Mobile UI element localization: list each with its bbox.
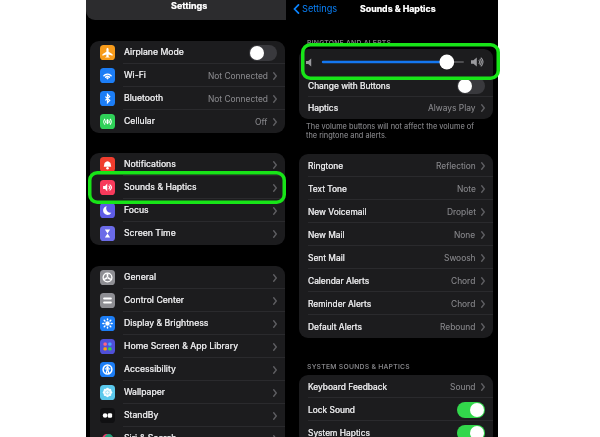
other: Open (273, 366, 277, 374)
staticText: Notifications (124, 159, 176, 170)
staticText: Display & Brightness (124, 318, 209, 329)
other: Open (273, 297, 277, 305)
other: Open (481, 231, 485, 239)
button[interactable]: StandBy (90, 404, 285, 427)
staticText: Wi-Fi (124, 70, 146, 81)
other: Open (273, 118, 277, 126)
other: Open (481, 254, 485, 262)
other: Open (273, 95, 277, 103)
staticText: Keyboard Feedback (308, 382, 388, 392)
other: Open (273, 274, 277, 282)
button[interactable]: Reminder Alerts (299, 292, 493, 315)
staticText: Chord (451, 276, 476, 286)
other: Open (273, 72, 277, 80)
staticText: Off (255, 117, 268, 127)
staticText: Not Connected (208, 71, 268, 81)
staticText: SYSTEM SOUNDS & HAPTICS (307, 362, 410, 370)
button[interactable]: Accessibility (90, 358, 285, 381)
staticText: Calendar Alerts (308, 276, 370, 286)
button[interactable]: General (90, 266, 285, 289)
staticText: Settings (171, 0, 208, 11)
button[interactable]: Volume (299, 49, 493, 75)
staticText: RINGTONE AND ALERTS (307, 38, 392, 46)
staticText: Sent Mail (308, 253, 345, 263)
staticText: Reflection (436, 161, 476, 171)
staticText: Settings (302, 3, 338, 14)
button[interactable]: Control Center (90, 289, 285, 312)
button[interactable]: Home Screen & App Library (90, 335, 285, 358)
other: Open (481, 104, 485, 112)
staticText: Change with Buttons (308, 81, 391, 91)
staticText: Cellular (124, 116, 156, 127)
other: Open (273, 184, 277, 192)
staticText: Screen Time (124, 228, 176, 239)
staticText: Airplane Mode (124, 47, 184, 58)
staticText: Lock Sound (308, 405, 356, 415)
button[interactable]: Wi-Fi (90, 64, 285, 87)
button[interactable]: Calendar Alerts (299, 269, 493, 292)
button[interactable]: Siri & Search (90, 427, 285, 437)
button[interactable]: Cellular (90, 110, 285, 133)
staticText: Text Tone (308, 184, 347, 194)
other: Open (481, 323, 485, 331)
button[interactable]: Airplane Mode (90, 41, 285, 64)
button[interactable]: Toggle (457, 402, 485, 418)
staticText: Note (457, 184, 476, 194)
other: Open (481, 162, 485, 170)
button[interactable]: Ringtone (299, 154, 493, 177)
button[interactable]: Lock Sound (299, 398, 493, 421)
button[interactable]: Screen Time (90, 222, 285, 245)
other: Open (273, 343, 277, 351)
staticText: New Mail (308, 230, 345, 240)
other: Open (481, 300, 485, 308)
other: Open (273, 161, 277, 169)
staticText: The volume buttons will not affect the v… (306, 122, 486, 140)
other: Open (273, 207, 277, 215)
staticText: Control Center (124, 295, 185, 306)
button[interactable]: Haptics (299, 97, 493, 119)
button[interactable]: Toggle (457, 425, 485, 437)
button[interactable]: System Haptics (299, 421, 493, 437)
button[interactable]: Keyboard Feedback (299, 375, 493, 398)
staticText: Siri & Search (124, 433, 177, 437)
button[interactable]: Focus (90, 199, 285, 222)
button[interactable]: Text Tone (299, 177, 493, 200)
other: Open (481, 185, 485, 193)
staticText: Swoosh (444, 253, 476, 263)
staticText: General (124, 272, 156, 283)
button[interactable]: Wallpaper (90, 381, 285, 404)
other: Open (273, 435, 277, 437)
button[interactable]: Bluetooth (90, 87, 285, 110)
staticText: Default Alerts (308, 322, 362, 332)
button[interactable]: Sent Mail (299, 246, 493, 269)
button[interactable]: Toggle (249, 45, 277, 61)
staticText: None (454, 230, 476, 240)
button[interactable]: Notifications (90, 153, 285, 176)
button[interactable]: Settings (286, 1, 343, 16)
staticText: Sound (450, 382, 476, 392)
other: Open (481, 277, 485, 285)
button[interactable]: Display & Brightness (90, 312, 285, 335)
staticText: Ringtone (308, 161, 344, 171)
staticText: System Haptics (308, 428, 370, 437)
other: Open (273, 389, 277, 397)
button[interactable]: New Voicemail (299, 200, 493, 223)
staticText: Focus (124, 205, 149, 216)
staticText: Haptics (308, 103, 339, 113)
staticText: Chord (451, 299, 476, 309)
button[interactable]: New Mail (299, 223, 493, 246)
other: Open (273, 412, 277, 420)
staticText: Not Connected (208, 94, 268, 104)
button[interactable]: Default Alerts (299, 315, 493, 338)
other: Open (481, 383, 485, 391)
staticText: New Voicemail (308, 207, 367, 217)
staticText: Sounds & Haptics (124, 182, 197, 193)
staticText: Always Play (428, 103, 476, 113)
staticText: Droplet (447, 207, 476, 217)
staticText: Bluetooth (124, 93, 164, 104)
staticText: Rebound (440, 322, 476, 332)
button[interactable]: Toggle (457, 78, 485, 94)
button[interactable]: Sounds & Haptics (90, 176, 285, 199)
button[interactable]: Change with Buttons (299, 75, 493, 97)
staticText: Sounds & Haptics (360, 3, 436, 14)
